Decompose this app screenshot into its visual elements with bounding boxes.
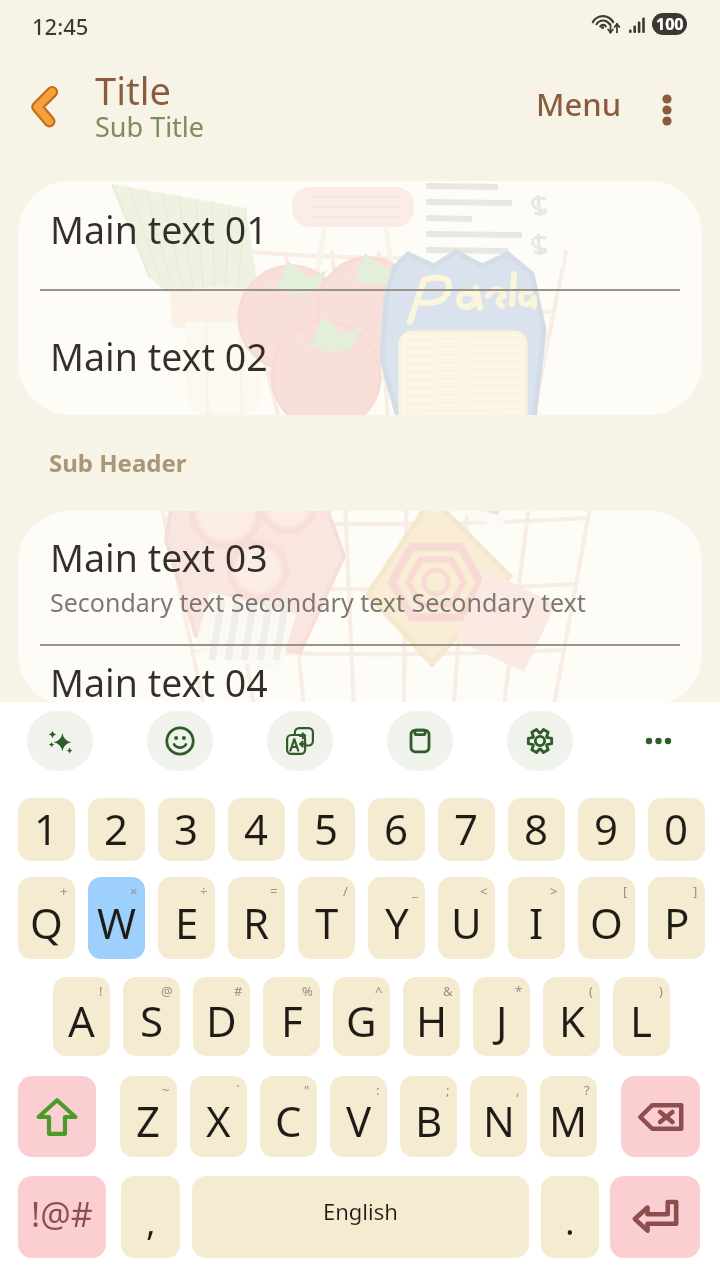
staticText: ": [304, 1081, 310, 1099]
staticText: Q: [30, 894, 63, 951]
button[interactable]: C: [260, 1076, 317, 1157]
staticText: U: [451, 894, 482, 951]
staticText: ;: [446, 1081, 450, 1099]
button[interactable]: J: [473, 977, 530, 1056]
button[interactable]: B: [400, 1076, 457, 1157]
button[interactable]: S: [123, 977, 180, 1056]
staticText: X: [206, 1092, 231, 1149]
button[interactable]: 9: [578, 798, 635, 861]
button[interactable]: G: [333, 977, 390, 1056]
button[interactable]: X: [190, 1076, 247, 1157]
staticText: 8: [524, 800, 549, 857]
staticText: (: [589, 982, 593, 1000]
button[interactable]: Main text 03: [18, 511, 702, 644]
staticText: N: [483, 1092, 515, 1149]
button[interactable]: AI suggestions: [27, 711, 93, 771]
staticText: !@#: [31, 1191, 93, 1237]
button[interactable]: 2: [88, 798, 145, 861]
button[interactable]: 8: [508, 798, 565, 861]
button[interactable]: English: [192, 1176, 529, 1258]
staticText: 9: [594, 800, 619, 857]
staticText: K: [559, 992, 585, 1049]
staticText: ?: [584, 1081, 590, 1099]
button[interactable]: More options: [637, 80, 697, 140]
button[interactable]: L: [613, 977, 670, 1056]
button[interactable]: U: [438, 877, 495, 959]
staticText: 7: [454, 800, 479, 857]
staticText: E: [175, 894, 199, 951]
button[interactable]: Main text 01: [18, 181, 702, 289]
button[interactable]: D: [193, 977, 250, 1056]
button[interactable]: Menu: [524, 73, 634, 135]
button[interactable]: F: [263, 977, 320, 1056]
button[interactable]: 6: [368, 798, 425, 861]
button[interactable]: Translate: [267, 711, 333, 771]
button[interactable]: 3: [158, 798, 215, 861]
button[interactable]: Shift: [18, 1076, 96, 1157]
button[interactable]: Q: [18, 877, 75, 959]
button[interactable]: 5: [298, 798, 355, 861]
button[interactable]: Emoji: [147, 711, 213, 771]
staticText: Main text 03: [50, 532, 268, 583]
staticText: `: [236, 1081, 240, 1099]
button[interactable]: Main text 04: [18, 646, 702, 706]
staticText: F: [281, 992, 303, 1049]
staticText: 3: [174, 800, 199, 857]
staticText: L: [630, 992, 653, 1049]
button[interactable]: R: [228, 877, 285, 959]
staticText: _: [412, 882, 418, 900]
button[interactable]: .: [541, 1176, 599, 1258]
button[interactable]: 7: [438, 798, 495, 861]
staticText: G: [346, 992, 377, 1049]
button[interactable]: Y: [368, 877, 425, 959]
button[interactable]: ,: [121, 1176, 180, 1258]
button[interactable]: O: [578, 877, 635, 959]
button[interactable]: K: [543, 977, 600, 1056]
button[interactable]: P: [648, 877, 705, 959]
staticText: ^: [375, 982, 383, 1000]
staticText: ÷: [200, 882, 208, 900]
button[interactable]: M: [540, 1076, 597, 1157]
button[interactable]: More: [600, 711, 720, 771]
button[interactable]: W: [88, 877, 145, 959]
button[interactable]: Back: [14, 76, 74, 136]
staticText: V: [346, 1092, 372, 1149]
button[interactable]: Backspace: [621, 1076, 700, 1157]
button[interactable]: E: [158, 877, 215, 959]
button[interactable]: V: [330, 1076, 387, 1157]
staticText: Secondary text Secondary text Secondary …: [50, 585, 586, 619]
staticText: O: [590, 894, 623, 951]
staticText: Z: [136, 1092, 161, 1149]
button[interactable]: 1: [18, 798, 75, 861]
staticText: %: [302, 982, 313, 1000]
staticText: #: [234, 982, 243, 1000]
button[interactable]: A: [53, 977, 110, 1056]
button[interactable]: N: [470, 1076, 527, 1157]
staticText: /: [343, 882, 348, 900]
button[interactable]: T: [298, 877, 355, 959]
button[interactable]: 4: [228, 798, 285, 861]
staticText: H: [416, 992, 448, 1049]
button[interactable]: !@#: [18, 1176, 106, 1258]
button[interactable]: Main text 02: [18, 291, 702, 415]
button[interactable]: Z: [120, 1076, 177, 1157]
button[interactable]: I: [508, 877, 565, 959]
staticText: S: [140, 992, 164, 1049]
button[interactable]: Settings: [507, 711, 573, 771]
staticText: 5: [314, 800, 339, 857]
staticText: =: [270, 882, 278, 900]
staticText: Sub Title: [95, 108, 205, 145]
staticText: Title: [95, 64, 171, 116]
staticText: B: [415, 1092, 443, 1149]
staticText: R: [243, 894, 270, 951]
staticText: I: [529, 894, 544, 951]
staticText: T: [315, 894, 339, 951]
button[interactable]: Clipboard: [387, 711, 453, 771]
staticText: Main text 02: [50, 331, 268, 382]
button[interactable]: H: [403, 977, 460, 1056]
staticText: Main text 01: [50, 204, 268, 255]
button[interactable]: Enter: [610, 1176, 700, 1258]
staticText: W: [97, 894, 137, 951]
button[interactable]: 0: [648, 798, 705, 861]
staticText: ×: [130, 882, 138, 900]
